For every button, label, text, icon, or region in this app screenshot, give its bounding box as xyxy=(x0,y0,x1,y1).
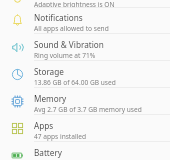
staticText: All apps allowed to send xyxy=(34,24,109,33)
staticText: 47 apps installed xyxy=(34,132,87,141)
button[interactable]: Apps xyxy=(0,115,170,141)
staticText: Avg 2.7 GB of 3.7 GB memory used xyxy=(34,105,142,114)
other: Display xyxy=(0,0,34,7)
other: Apps xyxy=(0,115,34,141)
staticText: Memory xyxy=(34,93,67,104)
button[interactable]: Battery xyxy=(0,142,170,160)
staticText: Apps xyxy=(34,120,54,131)
other: Battery xyxy=(0,142,34,160)
staticText: 13.86 GB of 64.00 GB used xyxy=(34,78,116,87)
staticText: Storage xyxy=(34,66,64,77)
other: Sound and Vibration xyxy=(0,34,34,60)
other: Notifications xyxy=(0,8,34,33)
staticText: Notifications xyxy=(34,12,83,23)
button[interactable]: Memory xyxy=(0,88,170,114)
other: Memory xyxy=(0,88,34,114)
button[interactable]: Display xyxy=(0,0,170,7)
staticText: Adaptive brightness is ON xyxy=(34,0,115,7)
other: Storage xyxy=(0,61,34,87)
button[interactable]: Notifications xyxy=(0,8,170,33)
button[interactable]: Storage xyxy=(0,61,170,87)
staticText: Ring volume at 71% xyxy=(34,51,96,60)
staticText: Sound & Vibration xyxy=(34,39,104,50)
staticText: Battery xyxy=(34,147,63,158)
button[interactable]: Sound and Vibration xyxy=(0,34,170,60)
